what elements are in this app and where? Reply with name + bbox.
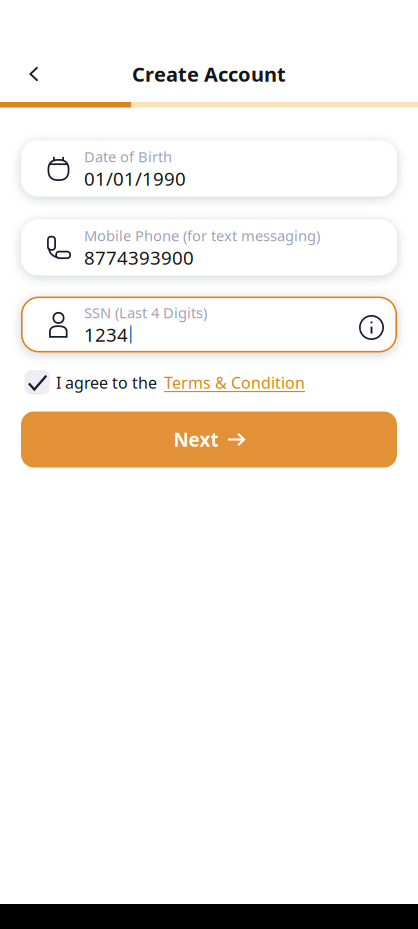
staticText: 8774393900 (84, 245, 194, 270)
staticText: SSN (Last 4 Digits) (84, 303, 207, 322)
button[interactable]: Terms & Condition (157, 372, 305, 393)
button[interactable]: Next (21, 411, 397, 467)
button[interactable]: Date of Birth (21, 140, 397, 196)
staticText: Mobile Phone (for text messaging) (84, 226, 320, 245)
button[interactable]: Back (14, 54, 54, 94)
staticText: Terms & Condition (164, 372, 305, 393)
staticText: 1234 (84, 322, 128, 347)
staticText: Create Account (132, 61, 286, 87)
button[interactable]: Mobile Phone (for text messaging) (21, 219, 397, 275)
button[interactable]: Agree to terms (23, 368, 51, 396)
button[interactable]: SSN (Last 4 Digits) (21, 296, 397, 352)
staticText: Date of Birth (84, 147, 172, 166)
staticText: 01/01/1990 (84, 166, 186, 191)
staticText: I agree to the (56, 372, 157, 393)
staticText: Next (173, 427, 218, 452)
